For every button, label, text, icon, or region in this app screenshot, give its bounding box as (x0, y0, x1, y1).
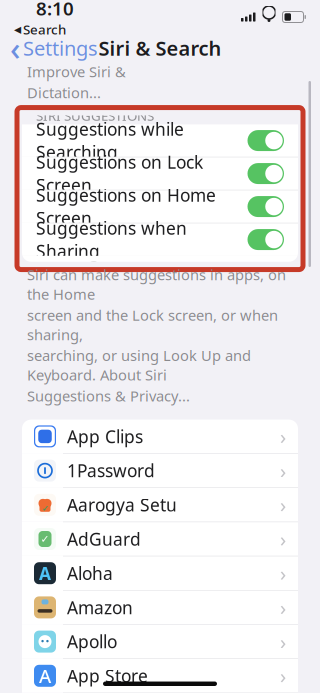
staticText: › (280, 594, 286, 621)
button[interactable]: ✓ (22, 522, 298, 556)
staticText: ✓ (40, 533, 49, 545)
button[interactable]: A (22, 658, 298, 693)
staticText: ◀ (14, 24, 21, 35)
staticText: › (280, 423, 286, 450)
staticText: SIRI SUGGESTIONS (36, 107, 154, 124)
button[interactable]: App Clips (22, 420, 298, 453)
staticText: Aloha (67, 562, 113, 585)
staticText: Siri can make suggestions in apps, on th… (27, 265, 286, 304)
button[interactable]: Suggestions on Lock Screen (22, 157, 298, 190)
staticText: AdGuard (67, 527, 141, 550)
staticText: App Clips (67, 425, 143, 448)
staticText: screen and the Lock screen, or when shar… (27, 305, 278, 344)
staticText: Voice recordings are also sent to Apple … (27, 2, 294, 41)
staticText: ‹ (10, 27, 20, 69)
staticText: › (280, 628, 286, 655)
button[interactable]: Suggestions on Home Screen (22, 190, 298, 223)
staticText: Apollo (67, 630, 117, 653)
button[interactable]: Suggestions while Searching (22, 124, 298, 157)
button[interactable]: Apollo (22, 624, 298, 658)
staticText: Dictation... (27, 83, 101, 102)
staticText: Amazon (67, 596, 133, 619)
staticText: searching, or using Look Up and Keyboard… (27, 346, 251, 385)
button[interactable]: Suggestions when Sharing (22, 223, 298, 256)
button[interactable]: 1Password (22, 453, 298, 487)
staticText: ✓ (42, 503, 50, 514)
staticText: 8:10 (36, 0, 74, 21)
staticText: › (280, 491, 286, 518)
staticText: App Store (67, 664, 148, 687)
button[interactable]: ‹ (0, 33, 108, 63)
staticText: › (280, 457, 286, 484)
staticText: improvement purposes. About Improve Siri… (27, 42, 237, 81)
staticText: A (39, 562, 51, 585)
staticText: Siri & Search (98, 35, 221, 61)
staticText: Suggestions & Privacy... (27, 386, 190, 406)
staticText: A (39, 663, 51, 688)
staticText: Suggestions when Sharing (36, 217, 187, 263)
button[interactable]: Amazon (22, 590, 298, 624)
staticText: Suggestions on Home Screen (36, 184, 216, 230)
staticText: Suggestions on Lock Screen (36, 151, 203, 197)
staticText: › (280, 662, 286, 689)
staticText: › (280, 560, 286, 586)
staticText: 1Password (67, 459, 155, 482)
staticText: Aarogya Setu (67, 493, 177, 516)
button[interactable]: A (22, 556, 298, 590)
staticText: Search (23, 20, 66, 38)
button[interactable]: ✓ (22, 487, 298, 522)
staticText: Suggestions while Searching (36, 118, 184, 164)
staticText: › (280, 526, 286, 552)
staticText: Settings (23, 35, 98, 61)
